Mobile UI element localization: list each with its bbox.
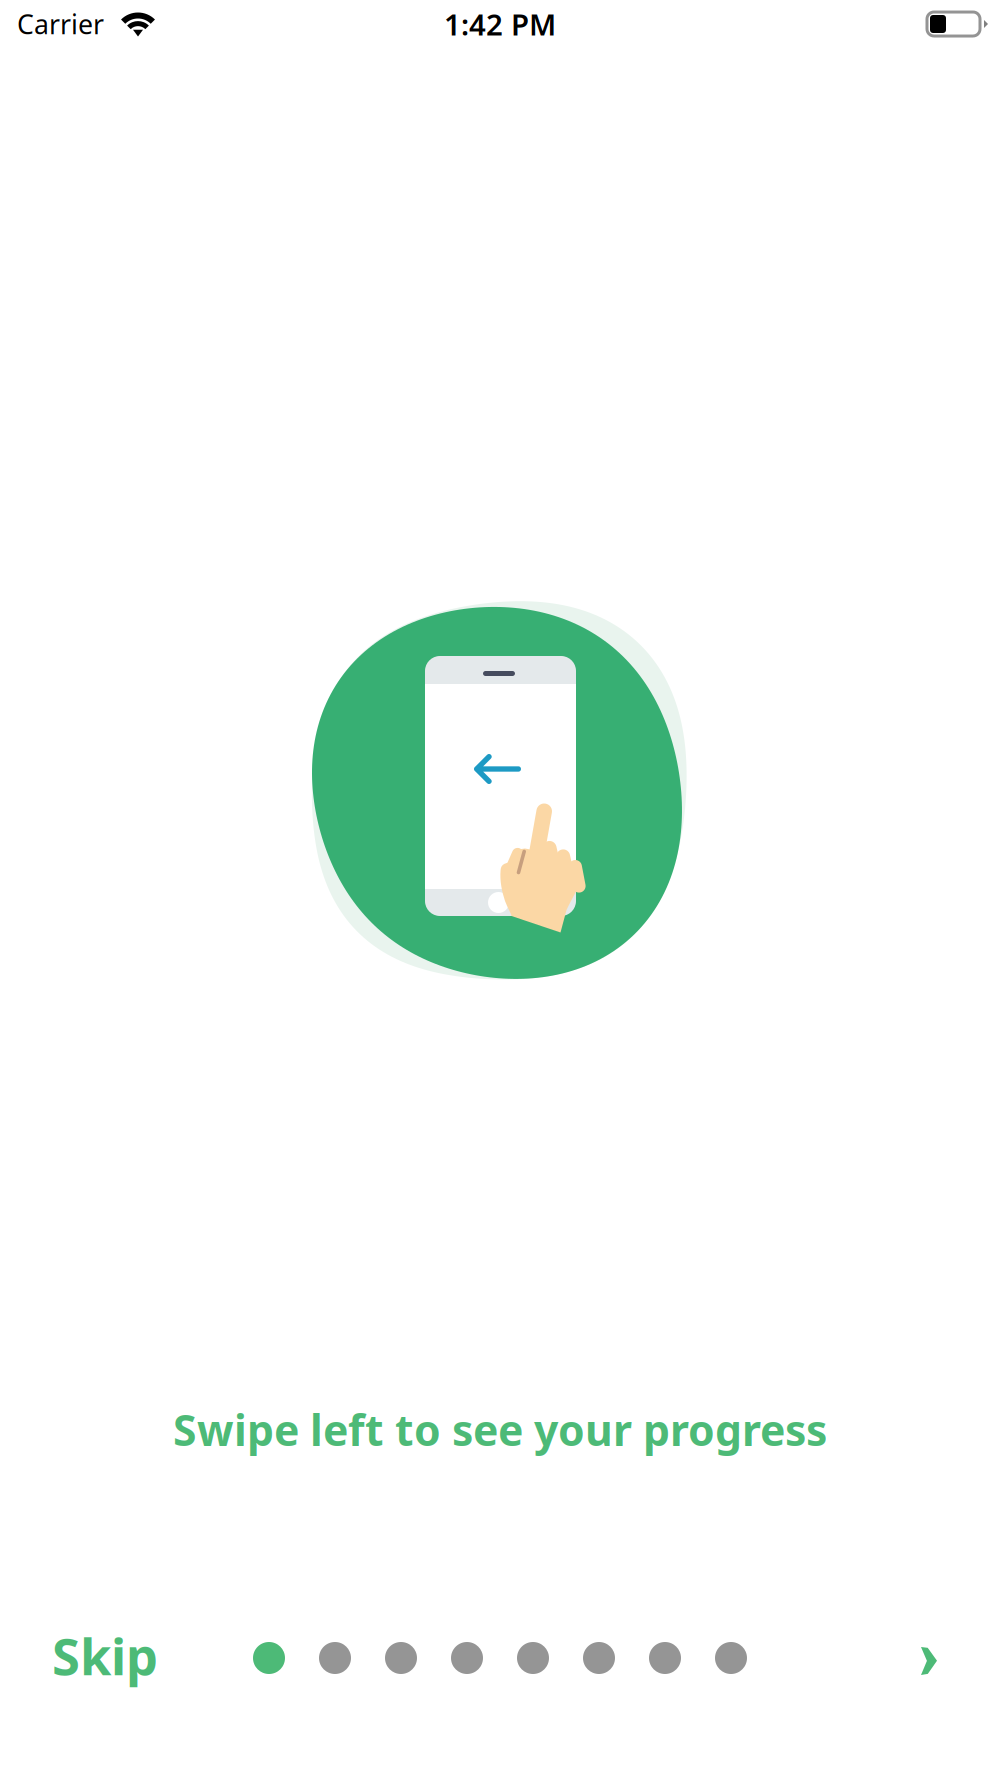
- button[interactable]: Next: [897, 1625, 961, 1697]
- button[interactable]: Skip: [38, 1606, 172, 1705]
- staticText: Carrier: [17, 6, 104, 42]
- staticText: Skip: [52, 1622, 158, 1689]
- staticText: 1:42 PM: [444, 4, 556, 43]
- staticText: Swipe left to see your progress: [173, 1401, 827, 1458]
